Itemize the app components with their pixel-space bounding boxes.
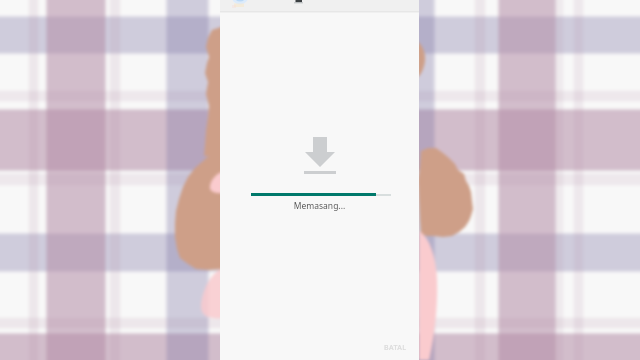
button[interactable]: App bar <box>220 0 419 11</box>
other: Account <box>230 0 262 10</box>
button[interactable] <box>251 193 391 196</box>
staticText: Memasang... <box>220 200 419 212</box>
button[interactable]: BATAL <box>382 341 409 355</box>
staticText: BATAL <box>384 343 407 353</box>
